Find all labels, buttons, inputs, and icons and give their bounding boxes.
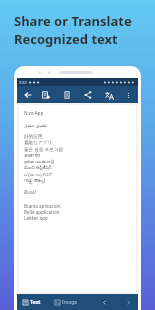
staticText: Nice App (24, 110, 44, 116)
button[interactable]: Copy (40, 89, 52, 101)
button[interactable]: Share (82, 89, 94, 101)
staticText: Buena aplicación (24, 203, 61, 209)
staticText: 좋은 응용 프로그램 (24, 146, 64, 152)
staticText: మంచి అప్లికేషన్ (24, 164, 52, 171)
button[interactable]: Next (123, 297, 134, 308)
staticText: 7:31 (19, 80, 27, 85)
staticText: تطبيق جميل (24, 122, 48, 128)
staticText: ಒಳ್ಳೆಯ ಅಪ್ಲಿಕೇಶನ್ (24, 171, 53, 177)
button[interactable]: Back (21, 88, 34, 101)
staticText: 好的应用 (24, 134, 43, 140)
button[interactable]: Text (21, 297, 43, 308)
staticText: 素敵なアプリ (24, 140, 52, 146)
button[interactable]: Previous (99, 297, 110, 308)
button[interactable]: Image (53, 297, 80, 308)
staticText: अच्छा ऐप (24, 152, 40, 158)
staticText: நல்ல பயன்பாடு (24, 158, 55, 164)
staticText: Recognized text (14, 30, 118, 48)
staticText: Text (30, 299, 41, 306)
staticText: Image (62, 299, 78, 306)
button[interactable]: Select all (61, 89, 73, 101)
staticText: Lekker app (24, 215, 48, 221)
staticText: Share or Translate (14, 12, 132, 30)
staticText: Belle application (24, 209, 60, 215)
button[interactable]: More options (122, 89, 134, 101)
button[interactable]: Translate (103, 89, 115, 101)
staticText: നല്ല ആപ്പ് (24, 177, 45, 183)
staticText: ดีแอป (24, 189, 36, 196)
